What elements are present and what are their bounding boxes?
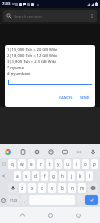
staticText: l	[89, 173, 91, 179]
button[interactable]: Settings	[32, 147, 41, 156]
staticText: am	[12, 2, 16, 6]
staticText: 7:33	[2, 1, 11, 7]
staticText: CANCEL	[59, 95, 73, 100]
staticText: h	[61, 173, 64, 179]
staticText: .	[80, 198, 81, 203]
button[interactable]: Search contacts	[3, 10, 97, 22]
button[interactable]: Shift	[8, 183, 17, 193]
button[interactable]: More	[74, 147, 83, 156]
button[interactable]: f	[41, 171, 48, 181]
button[interactable]: Backspace	[88, 183, 98, 193]
staticText: b	[61, 185, 64, 191]
button[interactable]: o	[82, 159, 89, 169]
button[interactable]: n	[68, 183, 76, 193]
button[interactable]: e	[28, 159, 35, 169]
staticText: f	[44, 173, 46, 179]
button[interactable]: Back	[16, 209, 28, 221]
button[interactable]: ?123	[8, 195, 19, 205]
staticText: p	[93, 161, 96, 167]
button[interactable]: One handed mode	[0, 170, 7, 182]
button[interactable]: g	[50, 171, 57, 181]
button[interactable]: Voice input	[88, 147, 97, 156]
button[interactable]: c	[38, 183, 46, 193]
button[interactable]: y	[55, 159, 62, 169]
staticText: # nyumbani	[7, 71, 31, 77]
staticText: * nyuma	[7, 65, 24, 71]
button[interactable]: r	[37, 159, 44, 169]
staticText: j	[71, 173, 73, 179]
staticText: z	[21, 185, 24, 191]
button[interactable]: j	[68, 171, 75, 181]
button[interactable]: z	[19, 183, 26, 193]
staticText: o	[84, 161, 87, 167]
staticText: u	[66, 161, 69, 167]
button[interactable]: ,	[21, 195, 27, 205]
button[interactable]: Clipboard	[18, 147, 27, 156]
button[interactable]: p	[91, 159, 98, 169]
button[interactable]: Home	[44, 209, 56, 221]
button[interactable]: SEND	[78, 94, 92, 101]
button[interactable]: u	[64, 159, 71, 169]
button[interactable]: Emoji	[0, 194, 7, 206]
staticText: i	[76, 161, 78, 167]
button[interactable]: v	[48, 183, 56, 193]
staticText: ?123	[10, 198, 18, 203]
button[interactable]: GIF	[60, 147, 69, 156]
staticText: v	[51, 185, 54, 191]
button[interactable]: a	[14, 171, 21, 181]
button[interactable]: Google search	[3, 147, 12, 156]
button[interactable]: x	[28, 183, 36, 193]
staticText: m	[80, 185, 85, 191]
staticText: ,	[24, 198, 25, 203]
button[interactable]: Enter	[85, 195, 98, 205]
button[interactable]: s	[23, 171, 30, 181]
staticText: y	[57, 161, 60, 167]
staticText: n	[71, 185, 74, 191]
button[interactable]: d	[32, 171, 39, 181]
button[interactable]: Stickers	[46, 147, 55, 156]
staticText: e	[30, 161, 33, 167]
button[interactable]: l	[86, 171, 93, 181]
button[interactable]: b	[58, 183, 66, 193]
staticText: SEND	[80, 95, 90, 100]
staticText: 3|3,800 Tsh = 2.5 GB Wiki	[7, 59, 57, 65]
staticText: 1|15,000 Tsh = 20 GB Wiki	[7, 47, 58, 53]
staticText: t	[49, 161, 51, 167]
button[interactable]: More options	[88, 12, 96, 20]
button[interactable]: q	[8, 159, 16, 169]
staticText: s	[25, 173, 28, 179]
button[interactable]: CANCEL	[57, 94, 75, 101]
button[interactable]: m	[78, 183, 86, 193]
staticText: d	[34, 173, 37, 179]
button[interactable]: w	[18, 159, 26, 169]
staticText: g	[52, 173, 55, 179]
staticText: q	[11, 161, 14, 167]
button[interactable]: Resize keyboard	[0, 158, 7, 170]
staticText: w	[20, 161, 24, 167]
staticText: c	[41, 185, 44, 191]
staticText: a	[16, 173, 19, 179]
staticText: x	[31, 185, 34, 191]
staticText: k	[79, 173, 82, 179]
button[interactable]: h	[59, 171, 66, 181]
button[interactable]: t	[46, 159, 53, 169]
button[interactable]: i	[73, 159, 80, 169]
button[interactable]: k	[77, 171, 84, 181]
staticText: Search contacts	[14, 14, 42, 19]
staticText: r	[40, 161, 42, 167]
staticText: 2|18,000 Tsh = 12 GB Wiki	[7, 53, 58, 59]
button[interactable]: Recent apps	[72, 209, 84, 221]
